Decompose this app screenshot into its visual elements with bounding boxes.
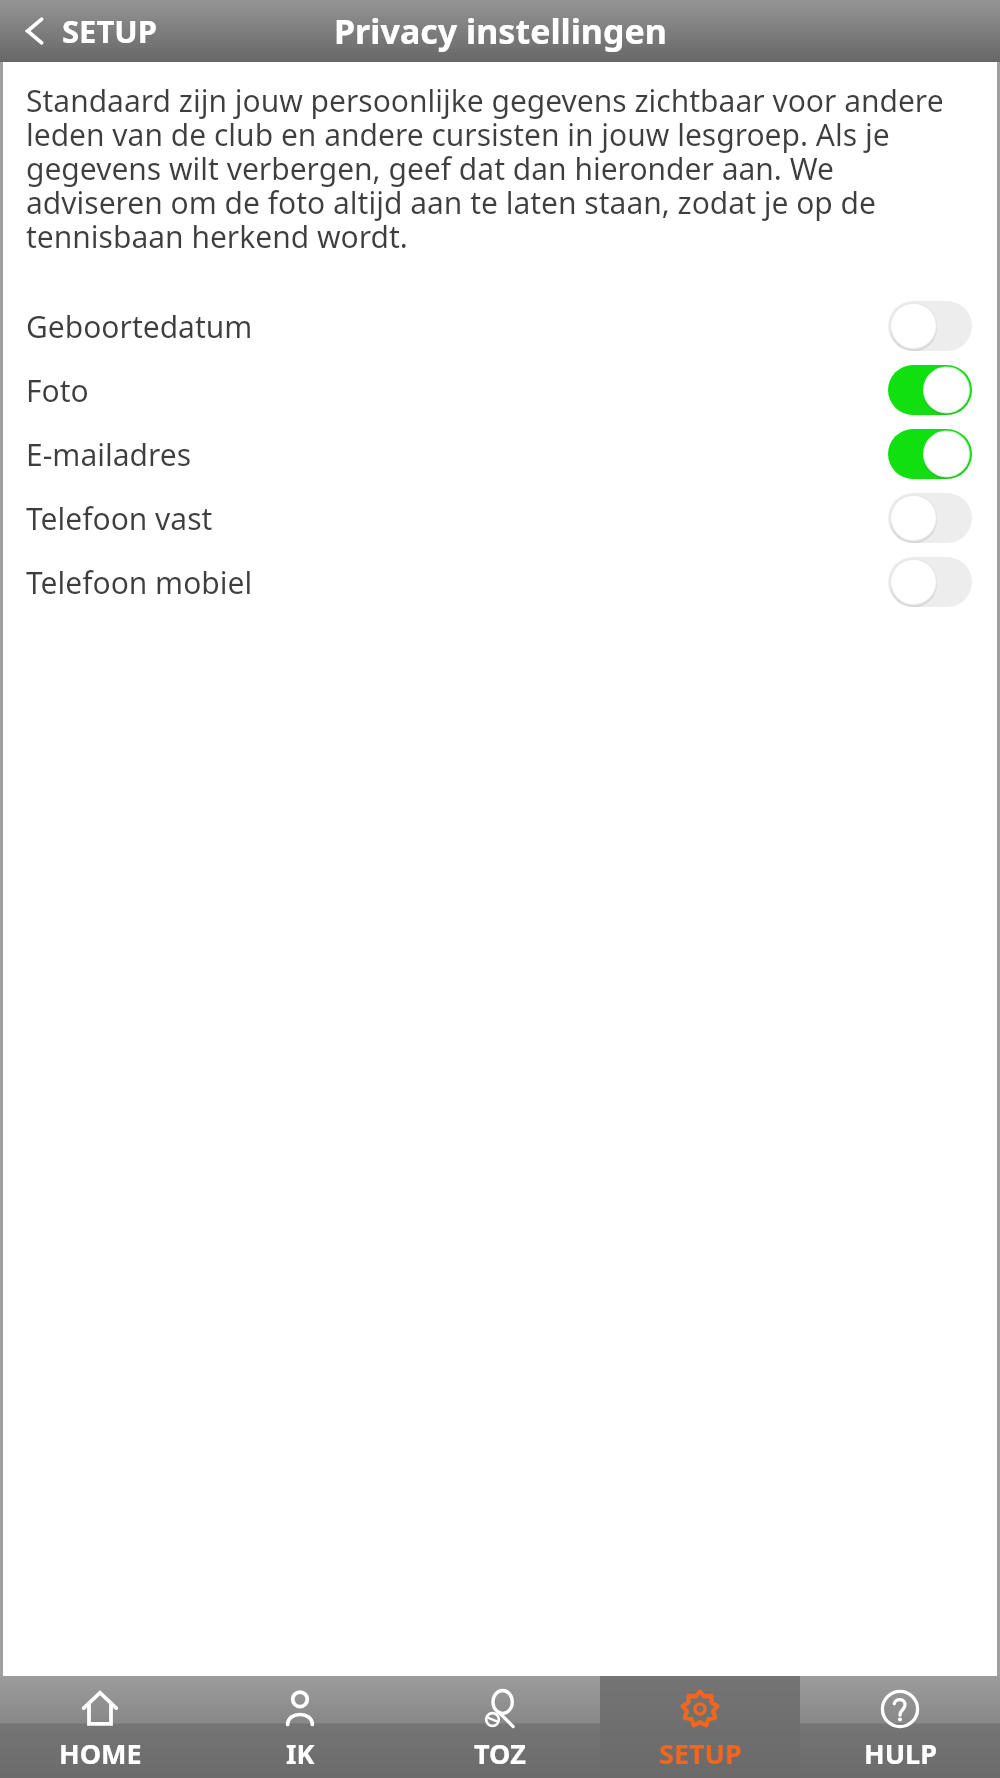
staticText: Geboortedatum <box>26 306 888 347</box>
button[interactable]: Geboortedatum <box>26 294 972 358</box>
button[interactable]: HULP <box>800 1676 1000 1778</box>
staticText: Telefoon mobiel <box>26 562 888 603</box>
button[interactable]: SETUP <box>600 1676 800 1778</box>
button[interactable]: Geboortedatum uit <box>888 301 972 351</box>
button[interactable]: HOME <box>0 1676 200 1778</box>
button[interactable]: Foto aan <box>888 365 972 415</box>
button[interactable]: Terug <box>0 0 182 62</box>
staticText: HOME <box>59 1735 142 1772</box>
staticText: IK <box>286 1735 315 1772</box>
staticText: E-mailadres <box>26 434 888 475</box>
staticText: Standaard zijn jouw persoonlijke gegeven… <box>26 80 972 256</box>
staticText: TOZ <box>474 1735 526 1772</box>
button[interactable]: Foto <box>26 358 972 422</box>
staticText: Foto <box>26 370 888 411</box>
button[interactable]: Telefoon vast <box>26 486 972 550</box>
button[interactable]: Telefoon mobiel <box>26 550 972 614</box>
button[interactable]: IK <box>200 1676 400 1778</box>
staticText: Privacy instellingen <box>334 8 667 54</box>
staticText: HULP <box>864 1735 937 1772</box>
button[interactable]: E-mailadres aan <box>888 429 972 479</box>
button[interactable]: Telefoon mobiel uit <box>888 557 972 607</box>
other: Terug <box>18 15 50 47</box>
button[interactable]: TOZ <box>400 1676 600 1778</box>
staticText: SETUP <box>659 1735 742 1772</box>
staticText: SETUP <box>62 10 158 52</box>
staticText: Telefoon vast <box>26 498 888 539</box>
button[interactable]: E-mailadres <box>26 422 972 486</box>
button[interactable]: Telefoon vast uit <box>888 493 972 543</box>
